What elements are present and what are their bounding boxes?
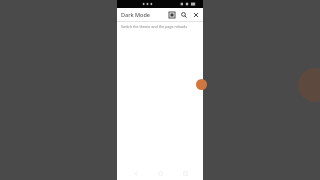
staticText: Switch the theme and the page reloads <box>121 24 187 29</box>
button[interactable]: Home <box>154 167 166 179</box>
button[interactable]: Bookmark <box>167 10 176 19</box>
button[interactable]: Close <box>191 10 200 19</box>
button[interactable]: Add <box>196 79 207 90</box>
staticText: Dark Mode Browser <box>121 11 167 18</box>
button[interactable]: Search <box>179 10 188 19</box>
button[interactable]: Recent apps <box>179 167 191 179</box>
